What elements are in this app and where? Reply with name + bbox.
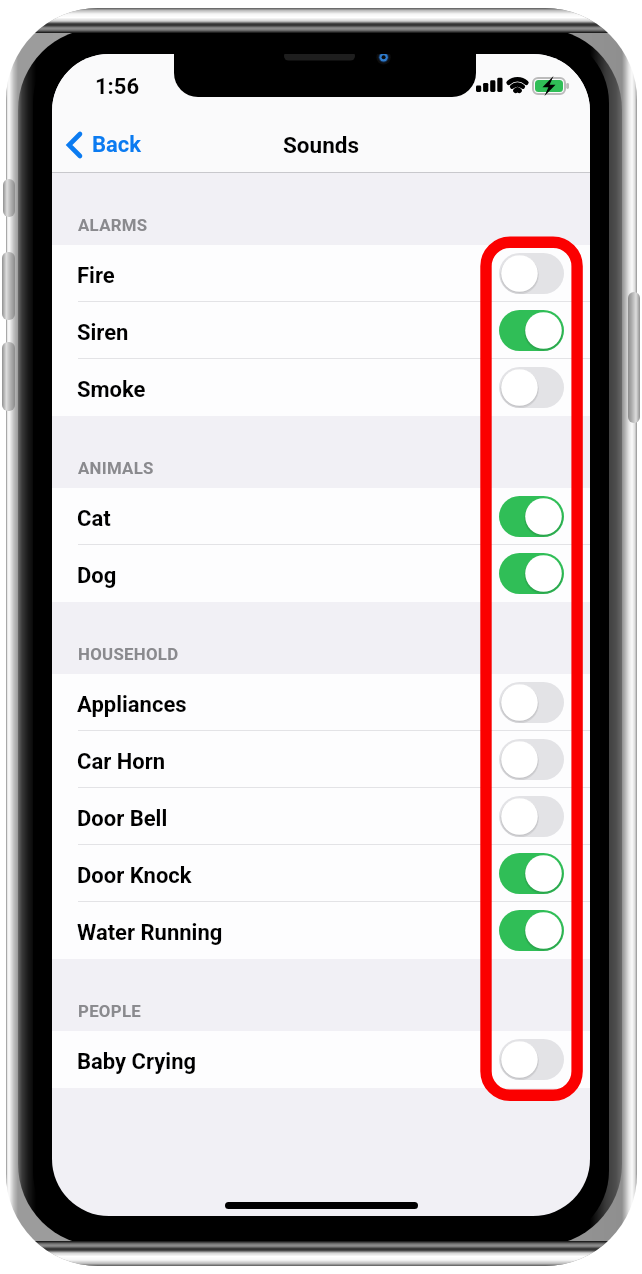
staticText: PEOPLE [78,1001,142,1021]
button[interactable]: Off [499,1039,564,1080]
staticText: Smoke [77,377,146,403]
button[interactable]: Appliances [52,674,590,731]
button[interactable]: On [499,496,564,537]
staticText: 1:56 [95,74,140,100]
staticText: Fire [77,263,115,289]
button[interactable]: Car Horn [52,731,590,788]
staticText: Door Knock [77,863,192,889]
button[interactable]: Water Running [52,902,590,959]
staticText: Sounds [283,132,359,158]
button[interactable]: Smoke [52,359,590,416]
staticText: Car Horn [77,749,166,775]
staticText: Water Running [77,920,223,946]
button[interactable]: Siren [52,302,590,359]
button[interactable]: Door Knock [52,845,590,902]
button[interactable]: Off [499,739,564,780]
button[interactable]: Baby Crying [52,1031,590,1088]
staticText: ANIMALS [78,458,154,478]
staticText: Baby Crying [77,1049,197,1075]
staticText: Dog [77,563,117,589]
button[interactable]: Off [499,682,564,723]
button[interactable]: On [499,310,564,351]
button[interactable]: Fire [52,245,590,302]
staticText: Back [92,132,142,158]
button[interactable]: Off [499,796,564,837]
button[interactable]: Off [499,367,564,408]
staticText: ALARMS [78,215,148,235]
button[interactable]: On [499,910,564,951]
button[interactable]: On [499,853,564,894]
button[interactable]: Door Bell [52,788,590,845]
button[interactable]: Dog [52,545,590,602]
staticText: Door Bell [77,806,168,832]
button[interactable]: On [499,553,564,594]
staticText: Appliances [77,692,187,718]
button[interactable]: Cat [52,488,590,545]
staticText: Cat [77,506,111,532]
button[interactable]: Back [52,126,152,164]
staticText: Siren [77,320,129,346]
staticText: HOUSEHOLD [78,644,179,664]
button[interactable]: Off [499,253,564,294]
